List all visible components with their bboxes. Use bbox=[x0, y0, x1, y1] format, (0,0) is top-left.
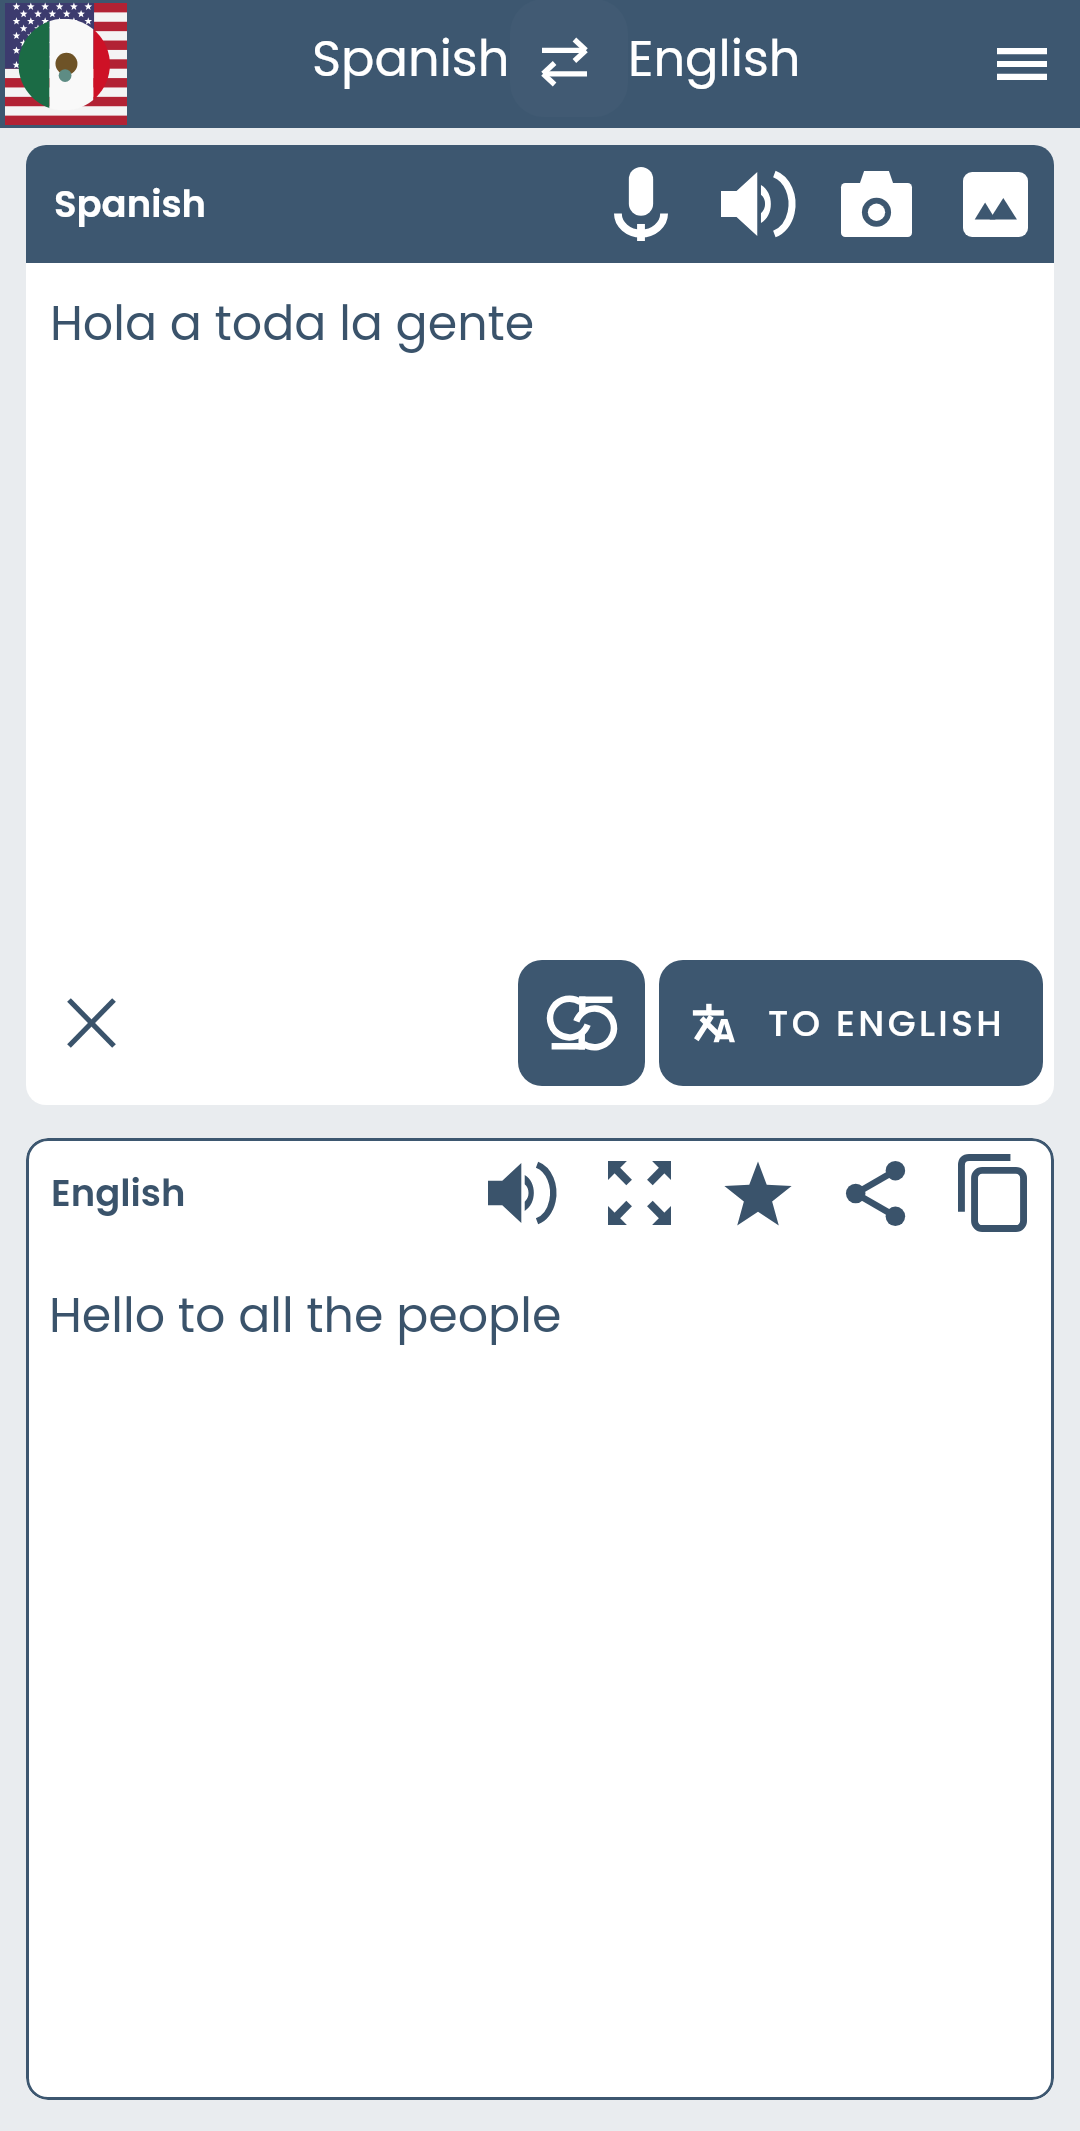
button[interactable]: TO ENGLISH bbox=[659, 960, 1043, 1086]
button[interactable]: Retranslate bbox=[518, 960, 645, 1086]
button[interactable]: Share bbox=[833, 1150, 919, 1236]
button[interactable]: Swap languages bbox=[510, 0, 628, 117]
button[interactable]: Listen bbox=[479, 1150, 565, 1236]
button[interactable]: Gallery bbox=[952, 161, 1038, 247]
button[interactable]: Camera bbox=[833, 161, 919, 247]
button[interactable]: Favorite bbox=[715, 1150, 801, 1236]
button[interactable]: Fullscreen bbox=[596, 1150, 682, 1236]
staticText: Hola a toda la gente bbox=[50, 290, 535, 356]
button[interactable]: Listen bbox=[715, 161, 801, 247]
button[interactable]: Clear bbox=[51, 983, 131, 1063]
staticText: English bbox=[628, 24, 801, 93]
button[interactable]: Menu bbox=[976, 18, 1068, 110]
staticText: Spanish bbox=[312, 24, 510, 93]
button[interactable]: Copy bbox=[949, 1150, 1035, 1236]
staticText: Spanish bbox=[54, 178, 207, 230]
staticText: Hello to all the people bbox=[49, 1282, 562, 1348]
staticText: English bbox=[51, 1167, 186, 1219]
button[interactable]: Language flags bbox=[5, 3, 127, 125]
button[interactable]: Microphone bbox=[598, 161, 684, 247]
staticText: TO ENGLISH bbox=[768, 998, 1006, 1048]
